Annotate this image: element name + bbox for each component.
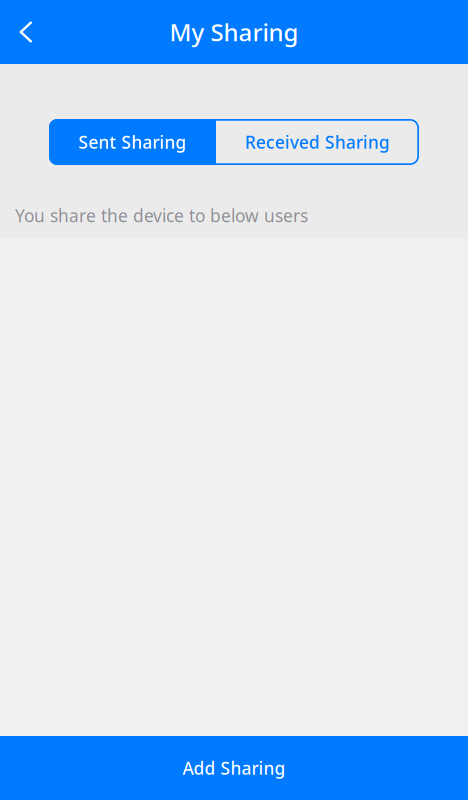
button[interactable]: Received Sharing [216, 119, 419, 165]
button[interactable]: Add Sharing [0, 736, 468, 800]
button[interactable]: Sent Sharing [49, 119, 216, 165]
staticText: Add Sharing [182, 756, 285, 779]
staticText: My Sharing [169, 16, 298, 48]
staticText: Received Sharing [245, 130, 390, 153]
button[interactable]: Back [0, 8, 49, 55]
staticText: You share the device to below users [15, 204, 308, 227]
staticText: Sent Sharing [78, 130, 186, 153]
